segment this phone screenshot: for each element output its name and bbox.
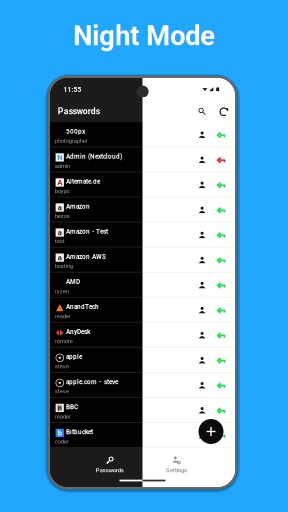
staticText: bezos xyxy=(55,213,70,219)
staticText: BBC xyxy=(66,403,78,411)
button[interactable]: a xyxy=(50,222,235,247)
button[interactable]: Add password xyxy=(198,419,223,444)
button[interactable]: A xyxy=(50,172,235,197)
staticText: Amazon - Test xyxy=(66,228,108,235)
staticText: hosting xyxy=(55,263,73,269)
staticText: buypc xyxy=(55,187,70,194)
staticText: admin xyxy=(55,162,70,169)
button[interactable]: B xyxy=(50,398,235,423)
staticText: a xyxy=(58,253,62,262)
staticText: A xyxy=(57,178,62,187)
staticText: b xyxy=(58,428,62,437)
staticText: Alternate.de xyxy=(66,178,100,185)
staticText: apple xyxy=(66,353,82,361)
button[interactable]: Passwords xyxy=(80,453,140,477)
staticText: steve xyxy=(55,363,69,370)
staticText: coder xyxy=(55,438,69,445)
staticText: Amazon AWS xyxy=(66,253,106,260)
button[interactable]: N xyxy=(50,147,235,172)
staticText: reader xyxy=(55,313,71,320)
button[interactable]: b xyxy=(50,423,235,448)
button[interactable]: Search xyxy=(194,103,210,119)
staticText: AMD xyxy=(66,278,80,285)
staticText: 11:55 xyxy=(63,86,81,94)
staticText: a xyxy=(58,203,62,212)
staticText: Passwords xyxy=(96,467,124,474)
staticText: N xyxy=(57,153,62,162)
staticText: AnyDesk xyxy=(66,328,90,336)
staticText: photographer xyxy=(55,137,88,144)
staticText: apple.com - steve xyxy=(66,378,118,386)
button[interactable]: AMD xyxy=(50,272,235,298)
button[interactable]: Refresh xyxy=(216,104,232,120)
button[interactable]: AnyDesk xyxy=(50,323,235,348)
staticText: test xyxy=(55,238,65,244)
staticText: Admin (Nextcloud) xyxy=(66,153,122,160)
staticText: Night Mode xyxy=(73,20,215,52)
staticText: Settings xyxy=(166,467,187,474)
staticText: remote xyxy=(55,338,73,345)
button[interactable]: Settings xyxy=(146,453,206,477)
staticText: ryzen xyxy=(55,288,69,295)
staticText: Amazon xyxy=(66,203,90,210)
button[interactable]: apple.com - steve xyxy=(50,373,235,398)
staticText: B xyxy=(57,403,62,412)
staticText: steve xyxy=(55,388,69,395)
button[interactable]: a xyxy=(50,197,235,222)
button[interactable]: 500px xyxy=(50,122,235,147)
staticText: reader xyxy=(55,413,71,420)
button[interactable]: a xyxy=(50,247,235,272)
staticText: Passwords xyxy=(58,106,100,116)
button[interactable]: apple xyxy=(50,348,235,373)
button[interactable]: AnandTech xyxy=(50,298,235,323)
staticText: AnandTech xyxy=(66,303,99,311)
staticText: a xyxy=(58,228,62,237)
staticText: 500px xyxy=(66,128,85,135)
staticText: Bitbucket xyxy=(66,428,93,436)
